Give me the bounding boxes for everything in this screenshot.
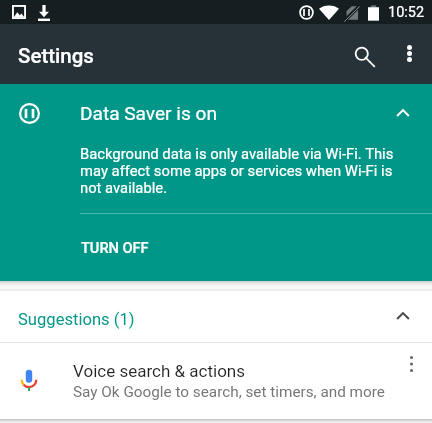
button[interactable]: Voice search & actions <box>0 343 432 419</box>
button[interactable]: Search <box>341 33 387 79</box>
staticText: Say Ok Google to search, set timers, and… <box>73 383 385 401</box>
staticText: Background data is only available via Wi… <box>80 146 402 197</box>
button[interactable]: More options <box>386 30 432 76</box>
staticText: Settings <box>18 44 94 68</box>
button[interactable]: TURN OFF <box>69 233 161 262</box>
staticText: TURN OFF <box>81 239 149 256</box>
button[interactable]: Collapse <box>379 89 426 136</box>
staticText: Data Saver is on <box>80 102 217 124</box>
button[interactable]: Suggestions (1) <box>0 291 432 342</box>
button[interactable]: More options <box>389 342 432 386</box>
staticText: 10:52 <box>388 4 425 21</box>
staticText: Voice search & actions <box>73 361 246 381</box>
staticText: Suggestions (1) <box>18 310 135 329</box>
